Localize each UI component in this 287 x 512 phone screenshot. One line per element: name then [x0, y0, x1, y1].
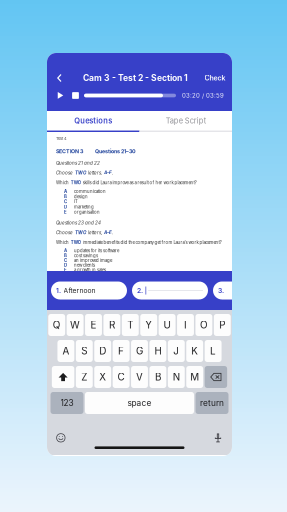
staticText: D [64, 263, 67, 268]
staticText: Check [204, 74, 225, 82]
button[interactable]: C [113, 366, 129, 388]
button[interactable]: D [94, 340, 111, 362]
staticText: E [90, 319, 96, 331]
staticText: B [155, 371, 161, 383]
staticText: Questions 23 and 24 [56, 220, 101, 225]
staticText: H [154, 345, 161, 357]
staticText: N [173, 371, 180, 383]
staticText: A [64, 248, 67, 253]
button[interactable]: 123 [50, 392, 83, 414]
staticText: C [64, 258, 67, 263]
staticText: TWO [75, 170, 86, 175]
staticText: J [173, 345, 179, 357]
staticText: . [112, 230, 113, 235]
staticText: marketing [74, 204, 94, 210]
staticText: O [200, 319, 208, 331]
staticText: A [62, 345, 69, 357]
staticText: space [127, 398, 151, 408]
button[interactable]: Stop [67, 89, 84, 102]
staticText: Tape Script [166, 116, 206, 125]
button[interactable]: Check [203, 69, 227, 87]
staticText: return [200, 398, 224, 408]
button[interactable]: Q [48, 314, 65, 336]
button[interactable]: A [57, 340, 74, 362]
staticText: K [191, 345, 198, 357]
staticText: an improved image [74, 258, 112, 263]
staticText: C [118, 371, 125, 383]
staticText: R [109, 319, 115, 331]
staticText: design [74, 194, 88, 199]
button[interactable]: Questions [47, 111, 139, 130]
button[interactable]: W [67, 314, 83, 336]
button[interactable]: I [177, 314, 194, 336]
staticText: M [190, 371, 199, 383]
button[interactable]: S [76, 340, 93, 362]
staticText: A–E [104, 230, 112, 235]
staticText: B [64, 194, 67, 199]
button[interactable]: 2. [132, 281, 208, 299]
button[interactable]: Dictation [207, 428, 229, 448]
staticText: Questions 21–30 [95, 148, 136, 155]
staticText: Y [145, 319, 152, 331]
staticText: S [81, 345, 87, 357]
button[interactable]: V [131, 366, 148, 388]
button[interactable]: M [186, 366, 203, 388]
button[interactable]: P [214, 314, 231, 336]
staticText: SECTION 3 [56, 148, 83, 155]
staticText: A–E [104, 170, 112, 175]
staticText: V [136, 371, 143, 383]
button[interactable]: B [149, 366, 166, 388]
staticText: immediate benefits did the company get f… [83, 240, 222, 245]
button[interactable]: R [103, 314, 120, 336]
staticText: Z [81, 371, 87, 383]
staticText: TWO [71, 240, 81, 245]
staticText: IT [74, 199, 78, 204]
staticText: Afternoon [63, 286, 95, 295]
staticText: Test 4 [56, 136, 67, 141]
button[interactable]: H [149, 340, 166, 362]
staticText: 123 [60, 398, 73, 408]
button[interactable]: U [159, 314, 175, 336]
button[interactable]: 1. [51, 281, 127, 299]
staticText: L [210, 345, 216, 357]
button[interactable]: space [85, 392, 194, 414]
staticText: Which [56, 240, 69, 245]
button[interactable]: L [205, 340, 222, 362]
staticText: A [64, 189, 67, 194]
button[interactable]: N [168, 366, 185, 388]
staticText: Q [53, 319, 61, 331]
staticText: 1. [56, 286, 61, 295]
staticText: communication [74, 189, 106, 194]
staticText: letters, [88, 230, 102, 235]
button[interactable]: 3. [213, 281, 287, 299]
staticText: E [64, 267, 67, 273]
button[interactable]: return [195, 392, 228, 414]
button[interactable]: Shift [52, 366, 74, 388]
button[interactable]: E [85, 314, 102, 336]
button[interactable]: Emoji keyboard [50, 428, 72, 448]
staticText: updates for its software [74, 248, 119, 253]
button[interactable]: J [168, 340, 185, 362]
staticText: Which [56, 180, 69, 185]
staticText: X [99, 371, 106, 383]
button[interactable]: Back [51, 69, 68, 87]
staticText: cost savings [74, 253, 98, 258]
button[interactable]: O [195, 314, 212, 336]
staticText: B [64, 253, 67, 258]
button[interactable]: Delete [205, 366, 227, 388]
button[interactable]: X [94, 366, 111, 388]
button[interactable]: Y [140, 314, 157, 336]
button[interactable]: G [131, 340, 148, 362]
staticText: 2. [137, 286, 143, 295]
button[interactable]: Z [76, 366, 93, 388]
button[interactable]: Tape Script [139, 111, 232, 130]
button[interactable]: F [113, 340, 129, 362]
staticText: Cam 3 - Test 2 - Section 1 [83, 73, 188, 83]
staticText: letters, [88, 170, 102, 175]
button[interactable]: K [186, 340, 203, 362]
button[interactable]: T [122, 314, 139, 336]
button[interactable]: Play [54, 89, 67, 102]
staticText: Questions [74, 116, 112, 125]
staticText: F [118, 345, 124, 357]
staticText: U [164, 319, 171, 331]
